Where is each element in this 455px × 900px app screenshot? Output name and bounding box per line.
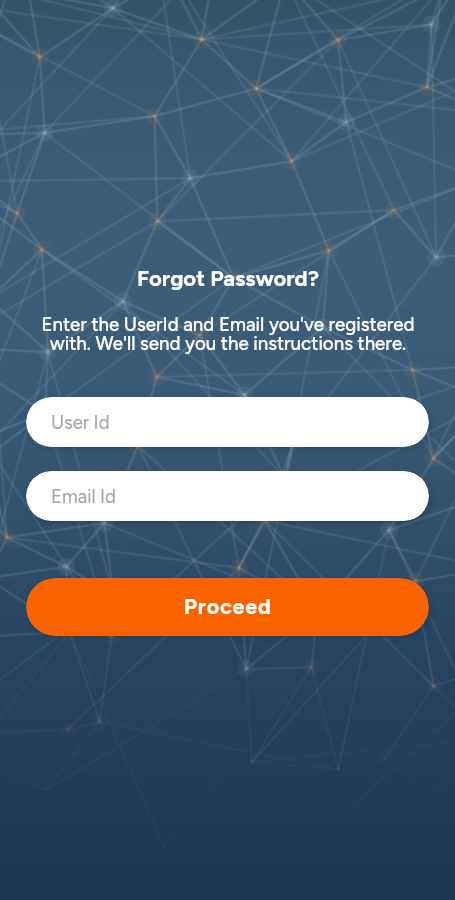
button[interactable]: Proceed [26,578,429,636]
staticText: Proceed [184,594,272,620]
staticText: Email Id [51,485,116,507]
staticText: User Id [51,411,110,433]
button[interactable]: User Id [26,397,429,447]
button[interactable]: Email Id [26,471,429,521]
staticText: Forgot Password? [137,265,319,291]
staticText: Enter the UserId and Email you've regist… [41,313,415,355]
